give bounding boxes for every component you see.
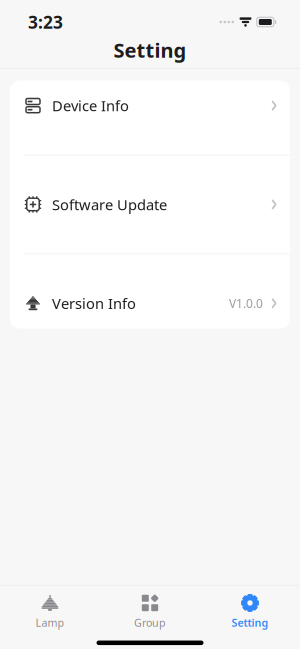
staticText: Device Info — [52, 96, 129, 115]
staticText: Lamp — [35, 615, 64, 630]
staticText: Setting — [231, 615, 268, 630]
staticText: Version Info — [52, 294, 136, 313]
button[interactable]: Lamp — [0, 591, 100, 633]
button[interactable]: Software Update — [10, 179, 290, 229]
staticText: 3:23 — [28, 10, 63, 33]
staticText: Software Update — [52, 195, 167, 214]
staticText: Setting — [113, 37, 186, 63]
button[interactable]: Setting — [200, 591, 300, 633]
button[interactable]: Group — [100, 591, 200, 633]
staticText: V1.0.0 — [229, 295, 263, 311]
button[interactable]: Version Info — [10, 278, 290, 328]
staticText: Group — [134, 615, 166, 630]
button[interactable]: Device Info — [10, 81, 290, 131]
